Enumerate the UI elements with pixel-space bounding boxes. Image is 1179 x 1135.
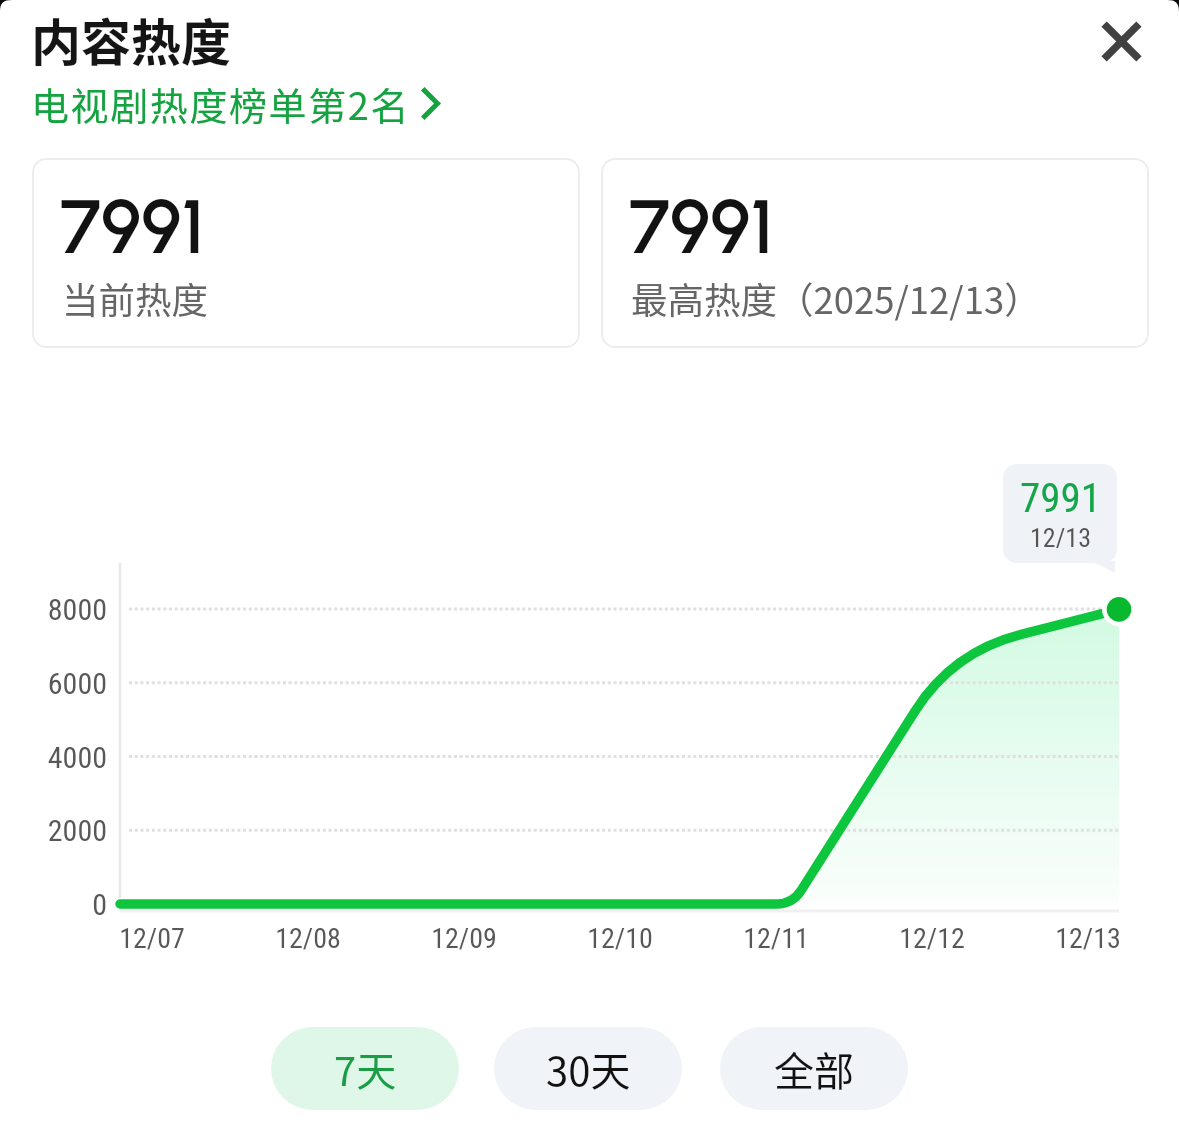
staticText: 最高热度（2025/12/13） <box>631 272 1041 325</box>
button[interactable]: 7991 <box>32 158 580 348</box>
staticText: 当前热度 <box>62 272 208 325</box>
staticText: 12/13 <box>1030 523 1091 553</box>
button[interactable]: 7天 <box>271 1027 459 1110</box>
staticText: 12/13 <box>1055 922 1121 955</box>
staticText: 内容热度 <box>31 3 231 75</box>
staticText: 12/11 <box>743 922 809 955</box>
staticText: 0 <box>92 887 107 922</box>
staticText: 12/09 <box>431 922 497 955</box>
staticText: 7991 <box>60 182 205 272</box>
staticText: 全部 <box>774 1040 854 1098</box>
staticText: 7991 <box>1020 474 1101 522</box>
staticText: 4000 <box>47 740 107 775</box>
staticText: 2000 <box>47 813 107 848</box>
staticText: 6000 <box>47 666 107 701</box>
staticText: 电视剧热度榜单第2名 <box>31 76 411 131</box>
staticText: 8000 <box>47 592 107 627</box>
button[interactable]: 7991 <box>601 158 1149 348</box>
staticText: 12/12 <box>899 922 965 955</box>
staticText: 30天 <box>546 1040 631 1098</box>
staticText: 7991 <box>629 182 774 272</box>
staticText: 12/08 <box>275 922 341 955</box>
button[interactable]: 电视剧热度榜单第2名 <box>31 76 440 131</box>
button[interactable]: Close <box>1087 7 1156 76</box>
button[interactable]: 30天 <box>494 1027 682 1110</box>
staticText: 7天 <box>334 1040 397 1098</box>
button[interactable]: 全部 <box>720 1027 908 1110</box>
staticText: 12/07 <box>119 922 185 955</box>
staticText: 12/10 <box>587 922 653 955</box>
